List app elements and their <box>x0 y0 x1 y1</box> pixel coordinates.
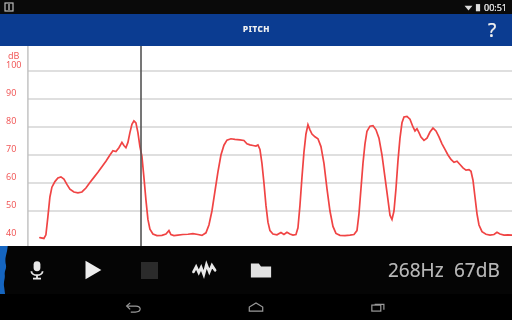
staticText: 67dB <box>454 257 500 283</box>
button[interactable]: Waveform <box>188 253 222 287</box>
button[interactable]: Help <box>472 14 512 46</box>
staticText: PITCH <box>243 23 270 34</box>
staticText: 80 <box>6 114 17 126</box>
staticText: 90 <box>6 86 17 98</box>
button[interactable]: Stop <box>132 253 166 287</box>
button[interactable]: Open file <box>244 253 278 287</box>
staticText: 40 <box>6 226 17 238</box>
staticText: 50 <box>6 198 17 210</box>
staticText: dB <box>8 49 20 61</box>
staticText: 100 <box>6 58 22 70</box>
staticText: 00:51 <box>484 1 508 13</box>
button[interactable]: Recents <box>358 294 398 320</box>
staticText: 268Hz <box>388 257 444 283</box>
staticText: 70 <box>6 142 17 154</box>
button[interactable]: Home <box>236 294 276 320</box>
staticText: ? <box>488 17 497 43</box>
button[interactable]: Back <box>114 294 154 320</box>
button[interactable]: PITCH <box>0 14 512 46</box>
button[interactable]: Play <box>76 253 110 287</box>
staticText: 60 <box>6 170 17 182</box>
button[interactable]: Record <box>20 253 54 287</box>
